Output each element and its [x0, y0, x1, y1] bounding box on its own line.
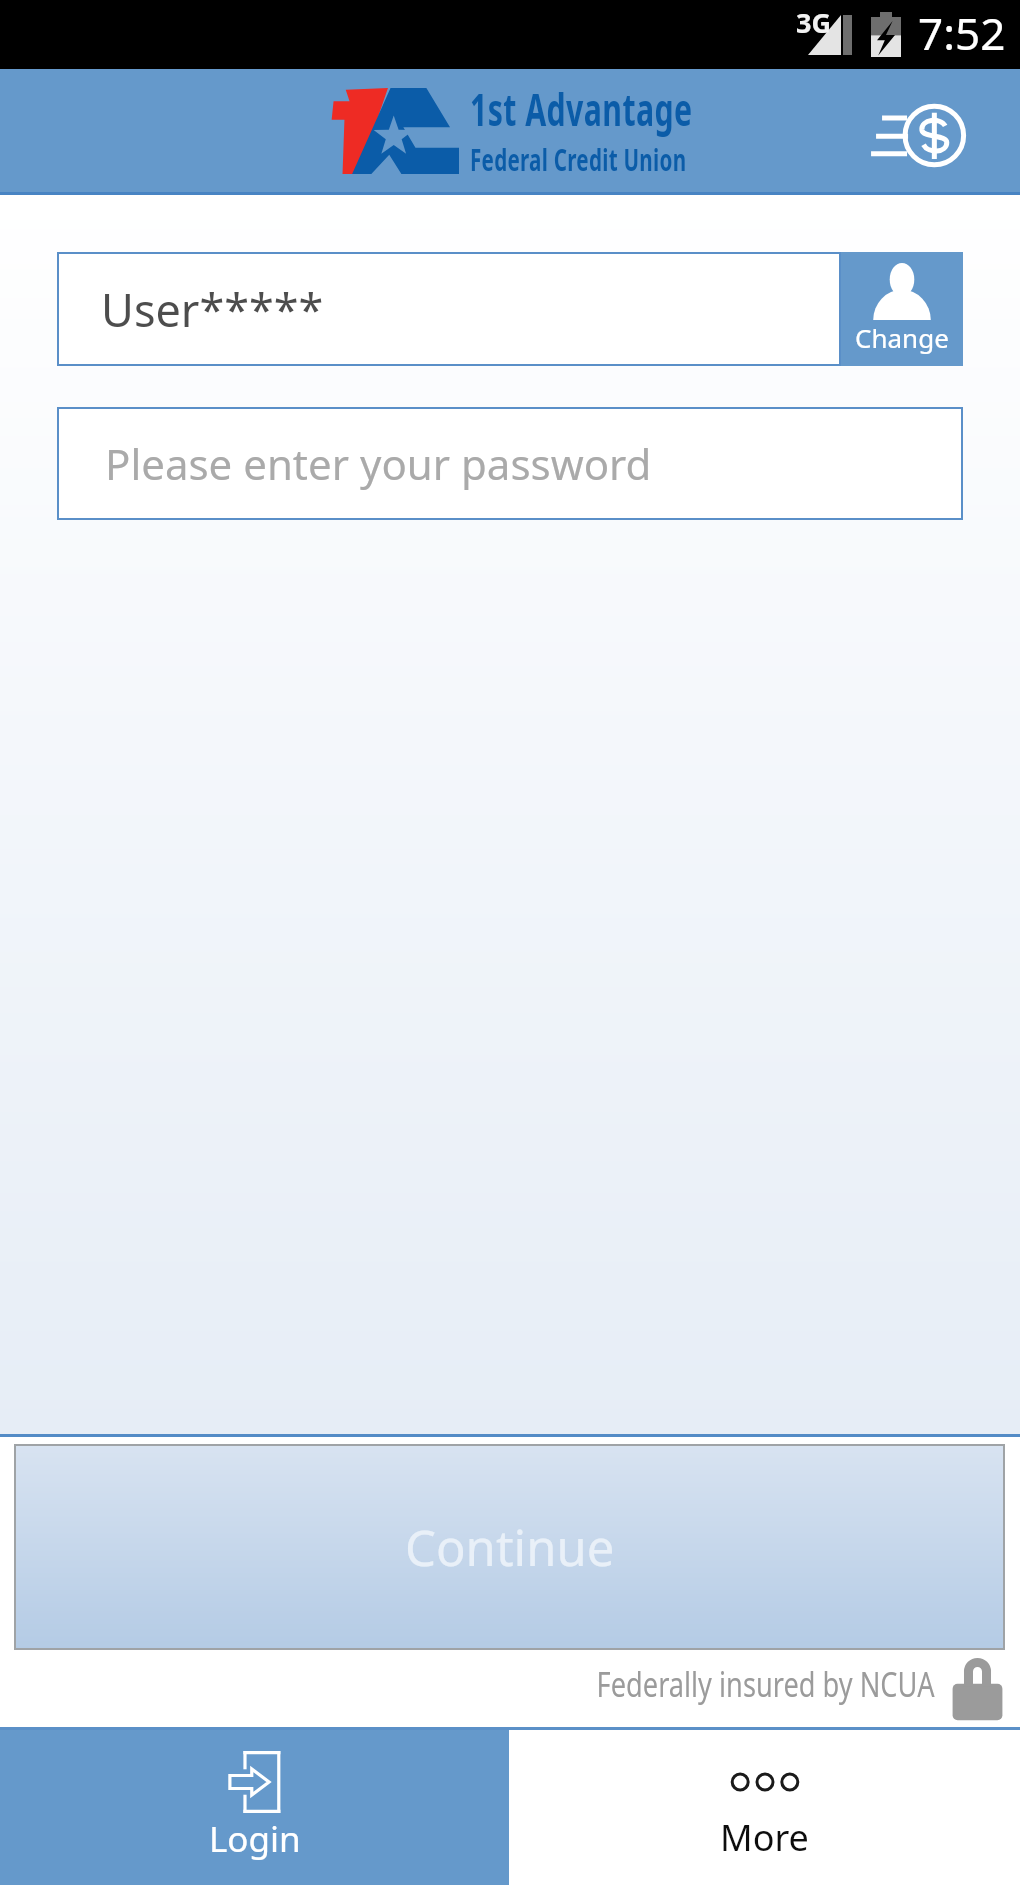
staticText: 1st Advantage: [470, 79, 692, 139]
staticText: Federally insured by NCUA: [597, 1661, 935, 1707]
button[interactable]: Continue: [14, 1444, 1005, 1650]
staticText: Change: [855, 320, 949, 355]
button[interactable]: More: [509, 1730, 1020, 1885]
staticText: Continue: [405, 1514, 615, 1581]
button[interactable]: Quick balance: [836, 89, 968, 185]
staticText: Federal Credit Union: [470, 139, 687, 181]
staticText: 3G: [796, 4, 831, 41]
button[interactable]: Change user: [841, 252, 963, 366]
staticText: Please enter your password: [105, 435, 652, 492]
staticText: User*****: [101, 279, 324, 340]
button[interactable]: Please enter your password: [57, 407, 963, 520]
staticText: 7:52: [918, 3, 1006, 63]
staticText: Login: [209, 1815, 301, 1863]
button[interactable]: Login: [0, 1730, 509, 1885]
button[interactable]: User*****: [57, 252, 841, 366]
staticText: More: [720, 1813, 809, 1862]
